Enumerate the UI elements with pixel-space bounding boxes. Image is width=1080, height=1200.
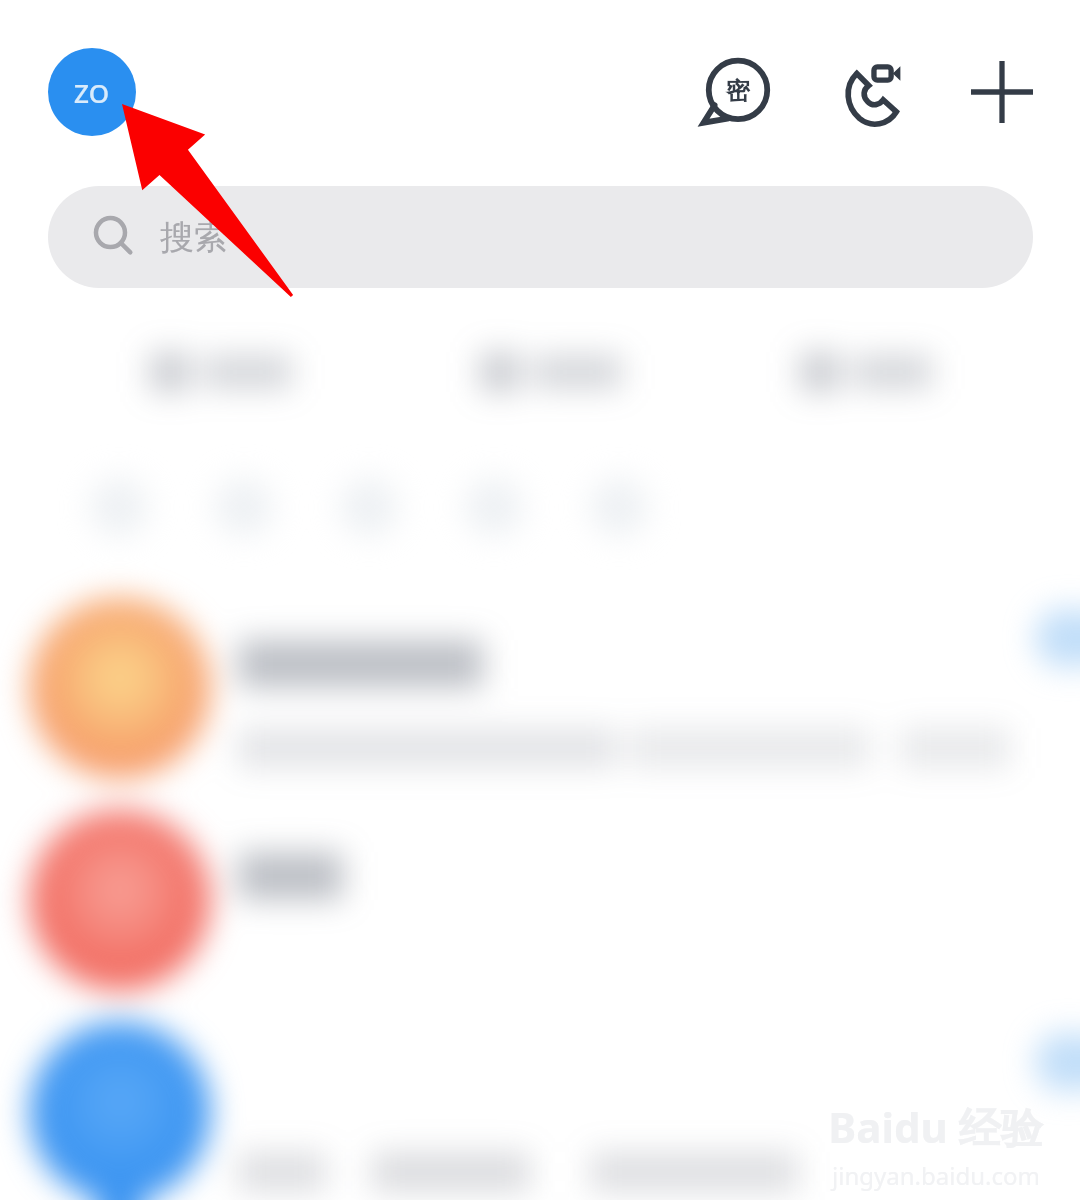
staticText: Baidu 经验 bbox=[828, 1098, 1043, 1155]
staticText: jingyan.baidu.com bbox=[832, 1159, 1040, 1192]
staticText: ZO bbox=[74, 75, 110, 110]
button[interactable]: Add bbox=[958, 48, 1046, 136]
button[interactable]: ZO bbox=[48, 48, 136, 136]
button[interactable]: Video call bbox=[826, 48, 914, 136]
button[interactable]: 密聊 bbox=[694, 48, 782, 136]
staticText: 搜索 bbox=[160, 216, 228, 259]
button[interactable]: 搜索 bbox=[48, 186, 1033, 288]
staticText: 密 bbox=[726, 76, 750, 106]
